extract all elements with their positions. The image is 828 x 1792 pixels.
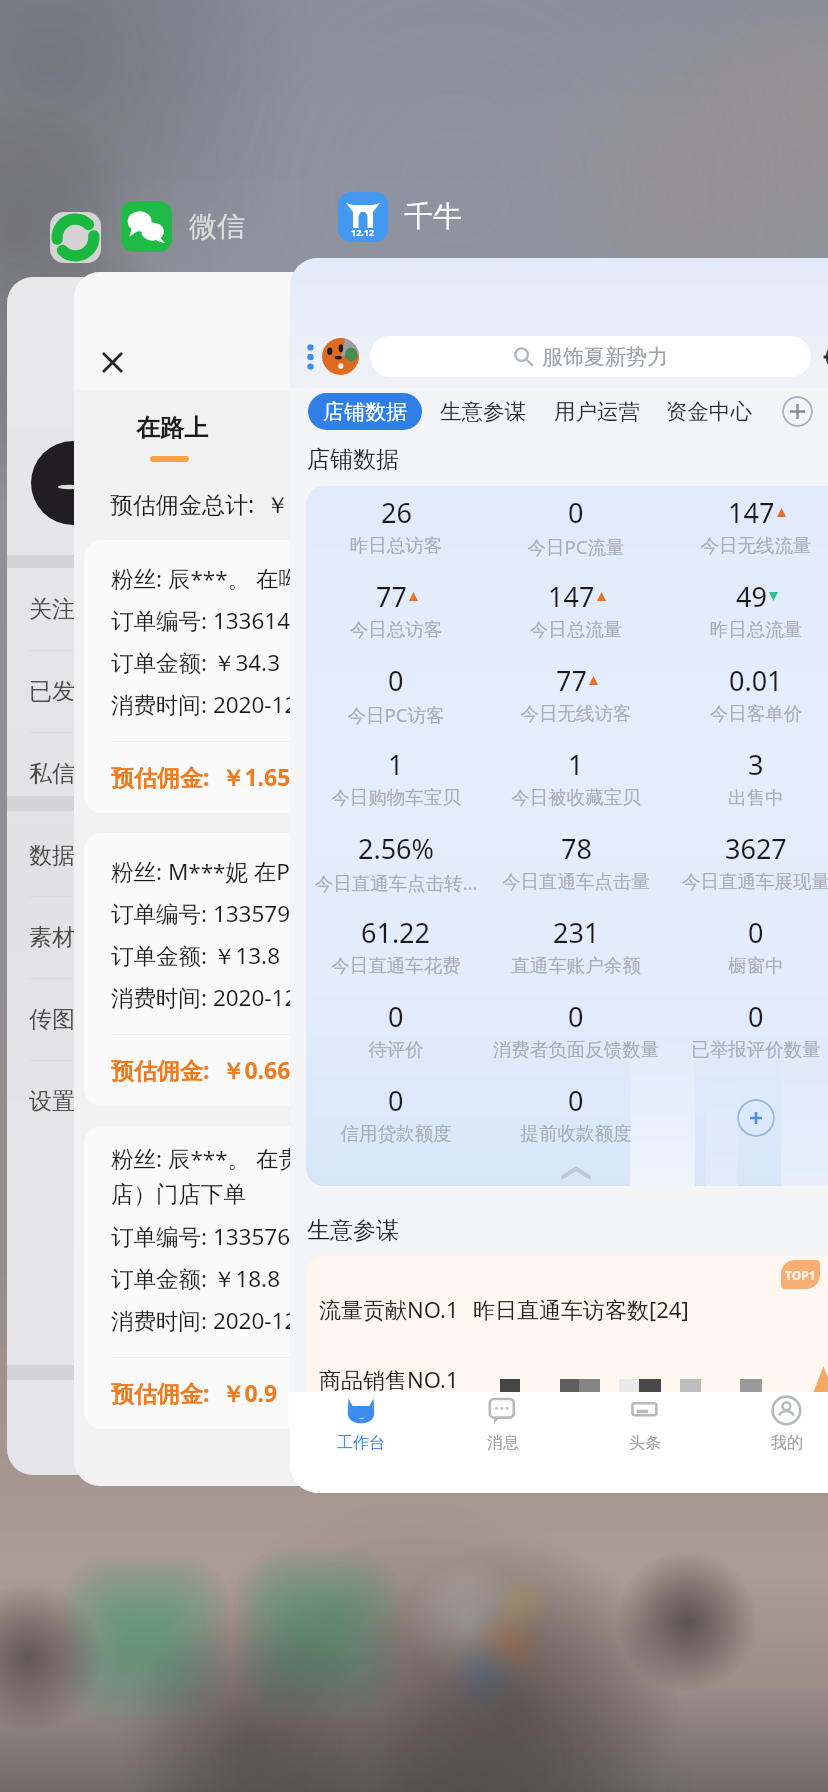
staticText: 订单金额: ￥13.8 (111, 940, 281, 971)
button[interactable]: 头条 (574, 1392, 716, 1462)
button[interactable]: 服饰夏新势力 (370, 336, 811, 377)
staticText: 生意参谋 (440, 398, 526, 425)
button[interactable]: 数据 (7, 814, 297, 896)
button[interactable]: Close (103, 353, 122, 372)
staticText: 在路上 (136, 413, 208, 443)
staticText: 今日无线访客 (486, 702, 666, 725)
staticText: 私信 (29, 759, 75, 788)
staticText: 77 (556, 662, 587, 699)
button[interactable]: 工作台 (290, 1392, 432, 1462)
staticText: 粉丝: 辰***。 在呦 (111, 563, 301, 594)
button[interactable]: 已发 (7, 650, 297, 732)
staticText: 店铺数据 (323, 399, 407, 425)
staticText: 待评价 (306, 1038, 486, 1061)
staticText: 今日被收藏宝贝 (486, 786, 666, 809)
staticText: 预估佣金: ￥0.9 (111, 1377, 278, 1408)
button[interactable]: Add metric (737, 1099, 775, 1137)
staticText: 3627 (725, 830, 787, 867)
staticText: 今日PC流量 (486, 534, 666, 559)
button[interactable]: 3 (666, 746, 828, 822)
button[interactable]: 粉丝: 辰***。 在贵 (84, 1126, 364, 1429)
button[interactable]: 231 (486, 914, 666, 990)
button[interactable]: 0 (306, 662, 486, 738)
staticText: 已发 (29, 677, 75, 706)
button[interactable]: 0 (306, 998, 486, 1074)
staticText: 订单编号: 1336148 (111, 605, 303, 636)
button[interactable]: 粉丝: M***妮 在Piz (84, 833, 364, 1106)
staticText: 0 (388, 1082, 404, 1119)
staticText: 26 (381, 494, 412, 531)
staticText: 工作台 (337, 1433, 385, 1453)
button[interactable]: 147 (486, 578, 666, 654)
staticText: 提前收款额度 (486, 1122, 666, 1145)
button[interactable]: Scan (823, 341, 828, 373)
staticText: 昨日总访客 (306, 534, 486, 557)
button[interactable]: App (50, 212, 101, 263)
button[interactable]: 0 (666, 998, 828, 1074)
button[interactable]: Profile (322, 338, 359, 375)
staticText: 粉丝: M***妮 在Piz (111, 856, 307, 887)
staticText: 已举报评价数量 (666, 1038, 828, 1061)
button[interactable]: 设置 (7, 1060, 297, 1142)
staticText: 147 (728, 494, 775, 531)
button[interactable]: 49 (666, 578, 828, 654)
staticText: 0.01 (729, 662, 783, 699)
staticText: 昨日总流量 (666, 618, 828, 641)
button[interactable]: Add tab (782, 396, 813, 427)
button[interactable]: 77 (306, 578, 486, 654)
button[interactable]: 0 (306, 1082, 486, 1158)
staticText: 店铺数据 (307, 445, 399, 474)
button[interactable]: 61.22 (306, 914, 486, 990)
staticText: 头条 (629, 1433, 661, 1453)
staticText: 设置 (29, 1087, 75, 1116)
button[interactable]: Qianniu (338, 192, 388, 242)
button[interactable]: 粉丝: 辰***。 在呦 (84, 540, 364, 813)
button[interactable]: 78 (486, 830, 666, 906)
staticText: 12.12 (351, 226, 375, 238)
staticText: TOP1 (785, 1267, 816, 1283)
staticText: 数据 (29, 841, 75, 870)
button[interactable]: 关注 (7, 568, 297, 650)
button[interactable]: 传图 (7, 978, 297, 1060)
button[interactable]: 私信 (7, 732, 297, 814)
staticText: 49 (736, 578, 767, 615)
staticText: 消费者负面反馈数量 (486, 1038, 666, 1061)
button[interactable]: 0 (486, 1082, 666, 1158)
staticText: 关注 (29, 595, 75, 624)
button[interactable]: 0.01 (666, 662, 828, 738)
button[interactable]: 0 (486, 998, 666, 1074)
button[interactable]: Profile (290, 258, 828, 1493)
button[interactable]: 1 (306, 746, 486, 822)
button[interactable]: 3627 (666, 830, 828, 906)
button[interactable]: 0 (486, 494, 666, 570)
staticText: 出售中 (666, 786, 828, 809)
staticText: 消息 (487, 1433, 519, 1453)
button[interactable]: 资金中心 (660, 393, 758, 430)
staticText: 今日总访客 (306, 618, 486, 641)
button[interactable]: 147 (666, 494, 828, 570)
staticText: 2.56% (358, 830, 435, 867)
button[interactable]: 生意参谋 (434, 393, 532, 430)
staticText: 消费时间: 2020-12 (111, 982, 298, 1013)
button[interactable]: WeChat (121, 201, 172, 252)
staticText: 今日直通车点击转… (306, 870, 486, 895)
button[interactable]: 77 (486, 662, 666, 738)
staticText: 昨日直通车访客数[24] (473, 1294, 689, 1324)
button[interactable]: 26 (306, 494, 486, 570)
button[interactable]: 0 (666, 914, 828, 990)
staticText: 消费时间: 2020-12 (111, 689, 298, 720)
button[interactable]: 我的 (716, 1392, 828, 1462)
staticText: 预估佣金总计: ￥3 (110, 488, 303, 519)
staticText: 预估佣金: ￥1.65 (111, 761, 291, 792)
staticText: 微信 (189, 209, 245, 244)
button[interactable]: 素材 (7, 896, 297, 978)
button[interactable]: 2.56% (306, 830, 486, 906)
button[interactable]: Close (74, 272, 374, 1486)
button[interactable]: 店铺数据 (308, 393, 422, 430)
staticText: 今日直通车点击量 (486, 870, 666, 893)
button[interactable]: 消息 (432, 1392, 574, 1462)
button[interactable]: 用户运营 (548, 393, 646, 430)
staticText: 0 (568, 1082, 584, 1119)
button[interactable]: 1 (486, 746, 666, 822)
button[interactable]: 关注 (7, 277, 297, 1475)
